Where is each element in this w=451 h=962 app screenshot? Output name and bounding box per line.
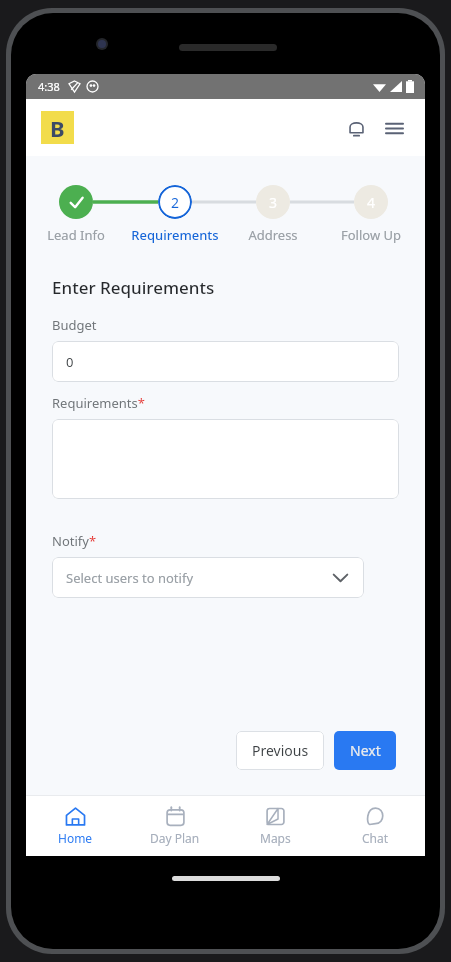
staticText: Lead Info	[31, 226, 121, 244]
staticText: Previous	[252, 741, 309, 760]
staticText: Notify*	[52, 532, 97, 550]
staticText: Budget	[52, 316, 97, 334]
staticText: 4:38	[38, 79, 60, 94]
staticText: Select users to notify	[66, 569, 194, 587]
staticText: 4	[367, 193, 376, 212]
button[interactable]: Menu	[377, 111, 411, 145]
staticText: Chat	[362, 830, 389, 846]
button[interactable]: Next	[334, 731, 396, 770]
button[interactable]: Chat	[325, 795, 425, 856]
staticText: Home	[58, 830, 93, 846]
staticText: 3	[269, 193, 278, 212]
staticText: Requirements*	[52, 394, 145, 412]
staticText: Enter Requirements	[52, 276, 215, 299]
button[interactable]: Previous	[236, 731, 324, 770]
staticText: Maps	[260, 830, 291, 846]
staticText: Address	[228, 226, 318, 244]
staticText: Follow Up	[326, 226, 416, 244]
staticText: B	[50, 113, 65, 143]
staticText: Requirements	[130, 226, 220, 244]
button[interactable]: Maps	[225, 795, 325, 856]
button[interactable]: 3	[228, 170, 318, 244]
button[interactable]: 0	[52, 341, 399, 382]
button[interactable]: Lead Info	[31, 170, 121, 244]
staticText: 2	[171, 193, 180, 212]
button[interactable]: 4	[326, 170, 416, 244]
button[interactable]: 2	[130, 170, 220, 244]
button[interactable]: Day Plan	[125, 795, 225, 856]
button[interactable]: Home	[26, 795, 125, 856]
button[interactable]: Select users to notify	[52, 557, 364, 598]
staticText: Next	[350, 741, 381, 760]
button[interactable]: Notifications	[339, 111, 373, 145]
button[interactable]	[52, 419, 399, 499]
staticText: 0	[66, 353, 74, 371]
button[interactable]: Brand logo	[41, 111, 74, 144]
staticText: Day Plan	[150, 830, 200, 846]
